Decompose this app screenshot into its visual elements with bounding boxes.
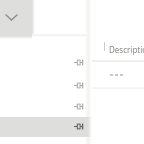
button[interactable]: Pin item bbox=[74, 59, 84, 66]
button[interactable]: Pin item bbox=[74, 103, 84, 110]
button[interactable] bbox=[0, 117, 88, 137]
button[interactable] bbox=[0, 75, 86, 96]
button[interactable]: Description bbox=[109, 44, 144, 55]
button[interactable]: Pin item bbox=[74, 123, 84, 130]
button[interactable] bbox=[0, 96, 86, 117]
other: Expand bbox=[5, 14, 18, 21]
button[interactable]: Expand bbox=[0, 0, 32, 36]
button[interactable]: Pin item bbox=[74, 82, 84, 89]
button[interactable] bbox=[0, 53, 86, 73]
